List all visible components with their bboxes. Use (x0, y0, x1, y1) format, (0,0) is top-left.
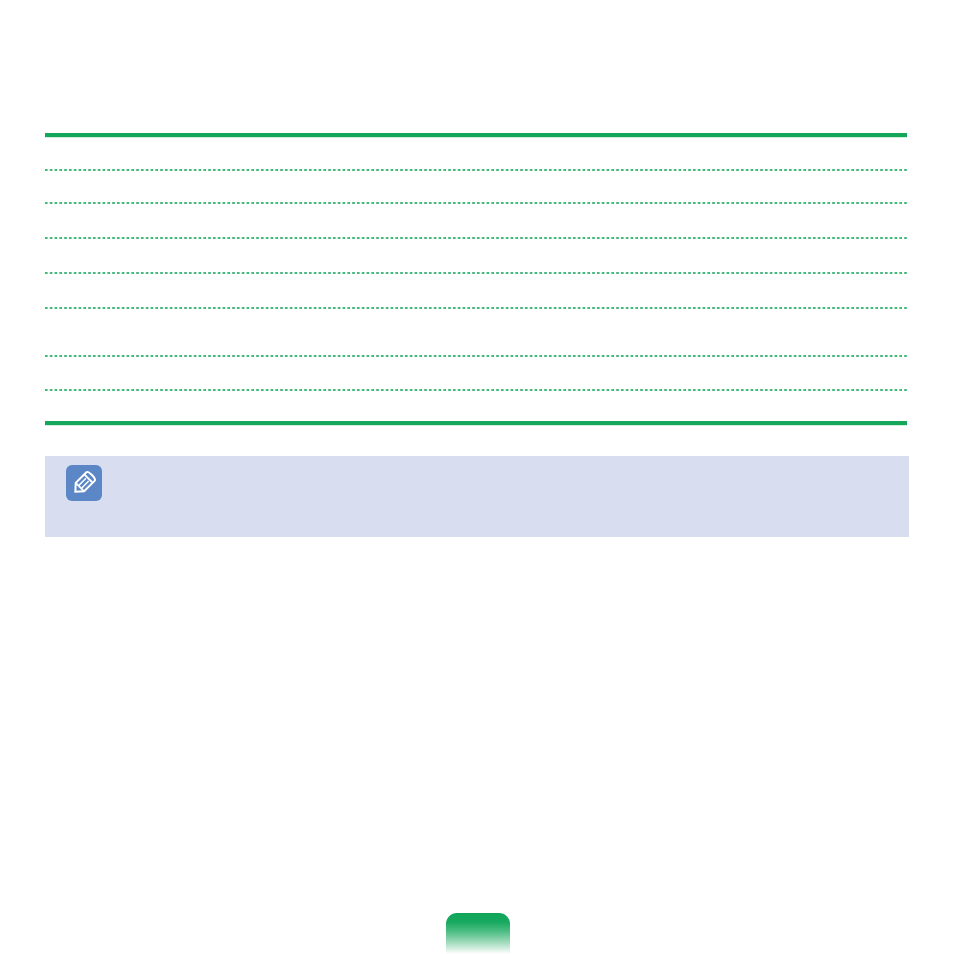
button[interactable]: Edit note (66, 465, 102, 501)
button[interactable]: Edit note (45, 456, 909, 537)
button[interactable]: Section tab (446, 913, 510, 954)
